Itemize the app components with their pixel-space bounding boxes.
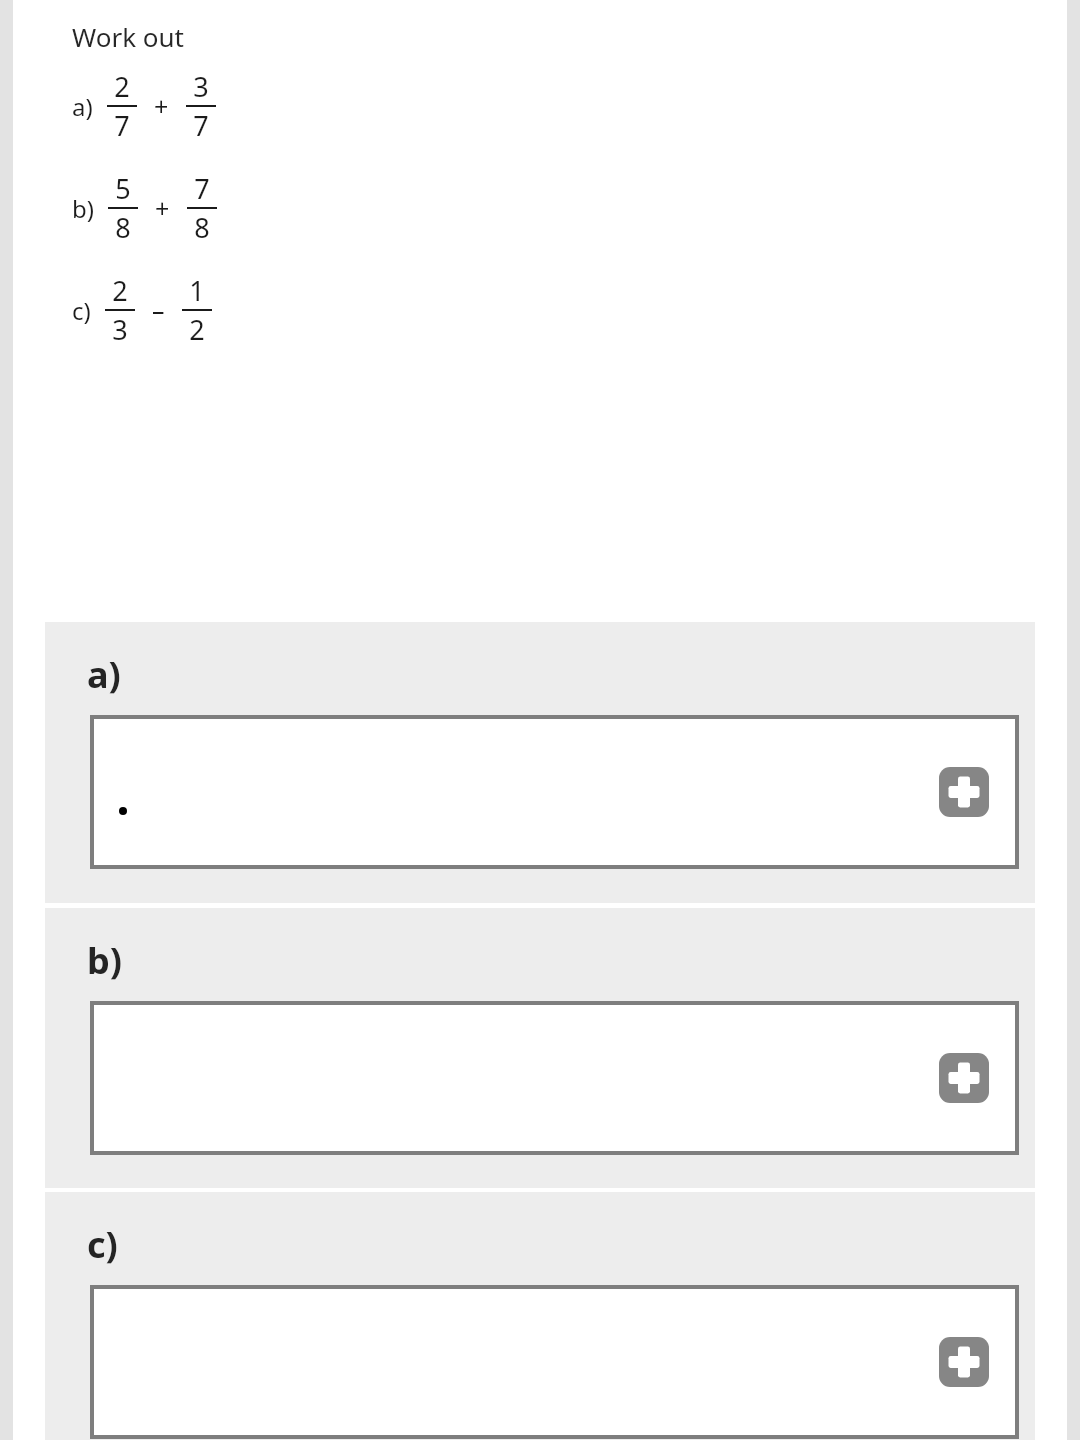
staticText: c)	[72, 294, 91, 327]
button[interactable]: Insert answer	[939, 1053, 989, 1103]
staticText: +	[155, 191, 170, 225]
button[interactable]: Insert answer	[92, 717, 1017, 867]
staticText: 3	[112, 311, 128, 348]
staticText: b)	[72, 192, 94, 225]
staticText: 8	[115, 209, 131, 246]
staticText: 7	[194, 170, 210, 207]
staticText: 2	[114, 68, 130, 105]
staticText: 7	[193, 107, 209, 144]
staticText: –	[152, 293, 165, 327]
staticText: +	[154, 89, 169, 123]
staticText: c)	[87, 1220, 118, 1269]
staticText: 8	[194, 209, 210, 246]
staticText: 3	[193, 68, 209, 105]
staticText: Work out	[72, 19, 184, 54]
staticText: 2	[112, 272, 128, 309]
staticText: b)	[87, 936, 122, 985]
staticText: a)	[72, 90, 93, 123]
staticText: 5	[115, 170, 131, 207]
staticText: 2	[189, 311, 205, 348]
button[interactable]: Insert answer	[939, 1337, 989, 1387]
staticText: 7	[114, 107, 130, 144]
button[interactable]: Insert answer	[92, 1003, 1017, 1153]
button[interactable]: Insert answer	[92, 1287, 1017, 1437]
staticText: 1	[189, 272, 205, 309]
staticText: a)	[87, 650, 121, 699]
button[interactable]: Insert answer	[939, 767, 989, 817]
